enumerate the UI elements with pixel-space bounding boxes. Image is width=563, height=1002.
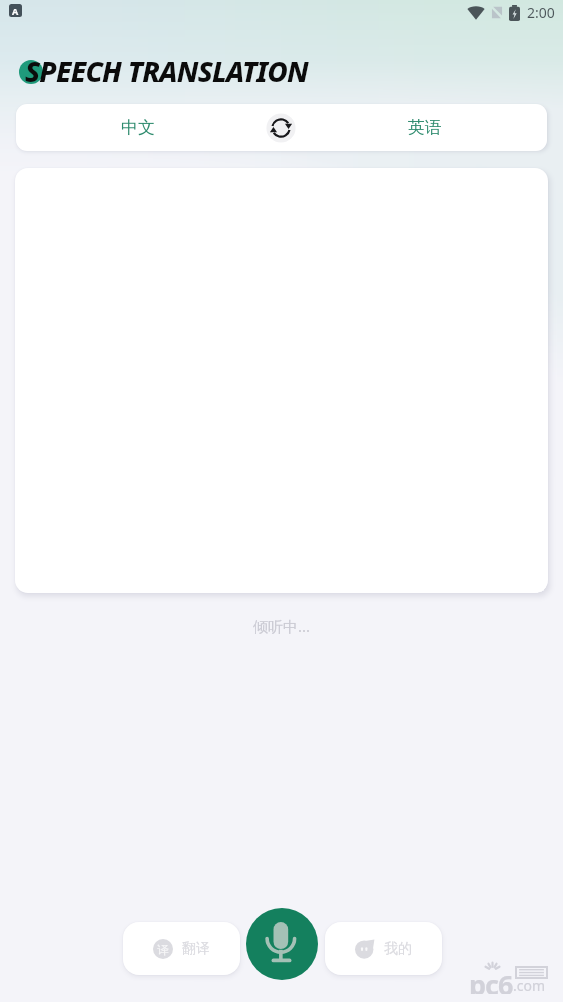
staticText: SPEECH TRANSLATION [25, 52, 308, 90]
staticText: 我的 [384, 940, 412, 958]
staticText: 译 [157, 942, 169, 957]
staticText: pc6 [469, 966, 513, 994]
staticText: A [12, 5, 19, 17]
staticText: 英语 [408, 117, 442, 138]
staticText: .com [513, 976, 546, 995]
staticText: 翻译 [182, 940, 210, 958]
button[interactable]: 英语 [303, 104, 547, 151]
staticText: 中文 [121, 117, 155, 138]
button[interactable]: Microphone [246, 908, 318, 980]
button[interactable]: 译 [123, 922, 240, 975]
staticText: 倾听中... [0, 616, 563, 636]
button[interactable]: 我的 [325, 922, 442, 975]
button[interactable]: 中文 [16, 104, 259, 151]
button[interactable]: Swap languages [259, 106, 303, 150]
staticText: 2:00 [527, 3, 555, 22]
